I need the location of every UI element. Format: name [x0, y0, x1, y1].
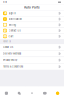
button[interactable]: Setting: [0, 22, 64, 28]
staticText: Setting: [9, 23, 16, 26]
button[interactable]: More: [51, 86, 64, 100]
button[interactable]: Wishlist: [26, 86, 38, 100]
button[interactable]: Cart: [38, 86, 51, 100]
button[interactable]: Search: [13, 86, 26, 100]
staticText: 9:41: [3, 1, 7, 3]
button[interactable]: Sign In: [0, 11, 64, 16]
staticText: Delivery Methods: [3, 52, 21, 55]
button[interactable]: Home: [0, 86, 13, 100]
staticText: About Us: [3, 40, 11, 43]
button[interactable]: About Us: [0, 44, 64, 50]
button[interactable]: Delivery Methods: [0, 51, 64, 57]
button[interactable]: Notification: [0, 16, 64, 22]
staticText: Cart: [9, 35, 14, 38]
staticText: Privacy Policy: [3, 59, 17, 61]
button[interactable]: Privacy Policy: [0, 57, 64, 63]
button[interactable]: Cart: [0, 34, 64, 39]
staticText: Notification: [9, 18, 22, 20]
staticText: Auto Parts: [24, 6, 40, 9]
staticText: About Us: [3, 46, 13, 48]
button[interactable]: Terms & Conditions: [0, 64, 64, 70]
staticText: Contact Us: [9, 29, 21, 32]
staticText: Terms & Conditions: [3, 65, 23, 68]
staticText: Sign In: [9, 12, 16, 15]
button[interactable]: Contact Us: [0, 28, 64, 33]
